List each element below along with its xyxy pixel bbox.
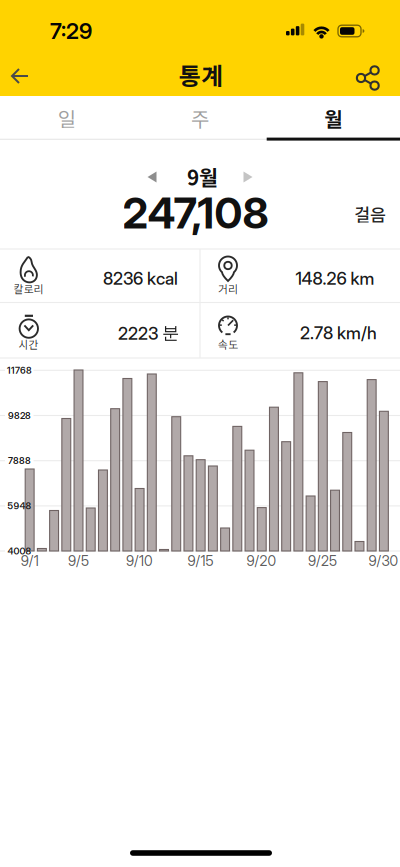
staticText: 통계 [179, 57, 223, 92]
button[interactable]: Next month [232, 161, 264, 193]
staticText: 9/15 [188, 552, 214, 569]
button[interactable]: Previous month [136, 161, 168, 193]
staticText: 9/5 [68, 552, 89, 569]
staticText: 9828 [8, 410, 31, 421]
button[interactable]: Share [346, 56, 390, 100]
staticText: 속도 [218, 336, 238, 352]
staticText: 7888 [8, 455, 31, 466]
staticText: 8236 kcal [103, 268, 178, 289]
button[interactable]: 월 [267, 98, 400, 138]
staticText: 11768 [7, 365, 32, 376]
button[interactable]: Back [0, 54, 43, 98]
staticText: 9/10 [126, 552, 153, 569]
button[interactable]: 일 [0, 98, 133, 138]
staticText: 9/30 [369, 552, 399, 569]
staticText: 9월 [187, 161, 218, 191]
staticText: 5948 [7, 500, 31, 512]
staticText: 247,108 [122, 187, 268, 239]
staticText: 9/25 [308, 552, 337, 569]
staticText: 칼로리 [13, 281, 43, 296]
button[interactable]: 주 [133, 98, 266, 138]
staticText: 주 [191, 103, 209, 132]
staticText: 9/20 [247, 552, 277, 569]
staticText: 7:29 [50, 18, 92, 44]
staticText: 걸음 [354, 201, 386, 227]
staticText: 일 [58, 103, 76, 132]
staticText: 2223 분 [118, 322, 179, 344]
staticText: 월 [324, 103, 342, 132]
staticText: 148.26 km [295, 268, 374, 289]
staticText: 9/1 [21, 552, 39, 569]
staticText: 거리 [218, 281, 238, 296]
staticText: 4008 [7, 545, 31, 557]
staticText: 2.78 km/h [300, 322, 377, 343]
staticText: 시간 [18, 336, 38, 352]
